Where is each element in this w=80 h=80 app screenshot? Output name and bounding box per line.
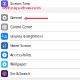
staticText: General [10, 15, 22, 20]
button[interactable]: A [0, 32, 80, 41]
button[interactable]: Accessibility [0, 50, 80, 60]
staticText: Home Screen [10, 43, 31, 48]
button[interactable]: Siri & Search [0, 69, 80, 78]
staticText: Control Centre [10, 25, 32, 29]
staticText: Display & Brightness [10, 34, 43, 39]
button[interactable]: Wallpaper [0, 60, 80, 69]
staticText: A [2, 34, 4, 38]
button[interactable]: Home Screen [0, 41, 80, 50]
button[interactable]: Control Centre [0, 22, 80, 32]
staticText: Wallpaper [10, 62, 26, 66]
staticText: Techniquehow.com [2, 5, 41, 10]
staticText: Accessibility [10, 53, 31, 57]
button[interactable]: Screen Time [0, 0, 80, 8]
staticText: A [4, 34, 7, 39]
staticText: Screen Time [10, 1, 30, 6]
staticText: Siri & Search [10, 71, 30, 76]
button[interactable]: General [0, 13, 80, 22]
